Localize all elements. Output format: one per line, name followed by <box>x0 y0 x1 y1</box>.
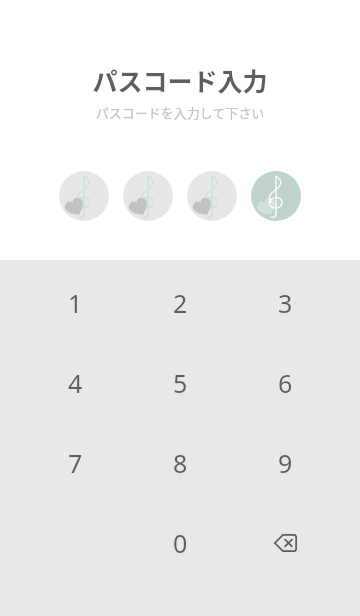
staticText: パスコードを入力して下さい <box>0 103 360 122</box>
button[interactable]: 3 <box>233 263 338 343</box>
button[interactable]: Backspace <box>233 503 338 583</box>
button[interactable]: 9 <box>233 423 338 503</box>
staticText: 9 <box>278 446 293 480</box>
button[interactable]: Empty digit <box>187 171 237 221</box>
staticText: 4 <box>68 366 83 400</box>
staticText: 2 <box>173 286 188 320</box>
button[interactable]: 0 <box>128 503 233 583</box>
button[interactable]: 1 <box>22 263 128 343</box>
staticText: 3 <box>278 286 293 320</box>
button[interactable]: Empty digit <box>123 171 173 221</box>
staticText: 7 <box>68 446 83 480</box>
button[interactable]: 4 <box>22 343 128 423</box>
other: Backspace <box>274 534 297 552</box>
staticText: 6 <box>278 366 293 400</box>
button[interactable]: 6 <box>233 343 338 423</box>
staticText: パスコード入力 <box>0 62 360 98</box>
staticText: 8 <box>173 446 188 480</box>
button[interactable]: 2 <box>128 263 233 343</box>
staticText: 1 <box>68 286 83 320</box>
button[interactable]: 8 <box>128 423 233 503</box>
button[interactable]: Empty digit <box>59 171 109 221</box>
button[interactable]: 5 <box>128 343 233 423</box>
button[interactable]: 7 <box>22 423 128 503</box>
staticText: 5 <box>173 366 188 400</box>
button[interactable]: Entered digit <box>251 171 301 221</box>
staticText: 0 <box>173 526 188 560</box>
